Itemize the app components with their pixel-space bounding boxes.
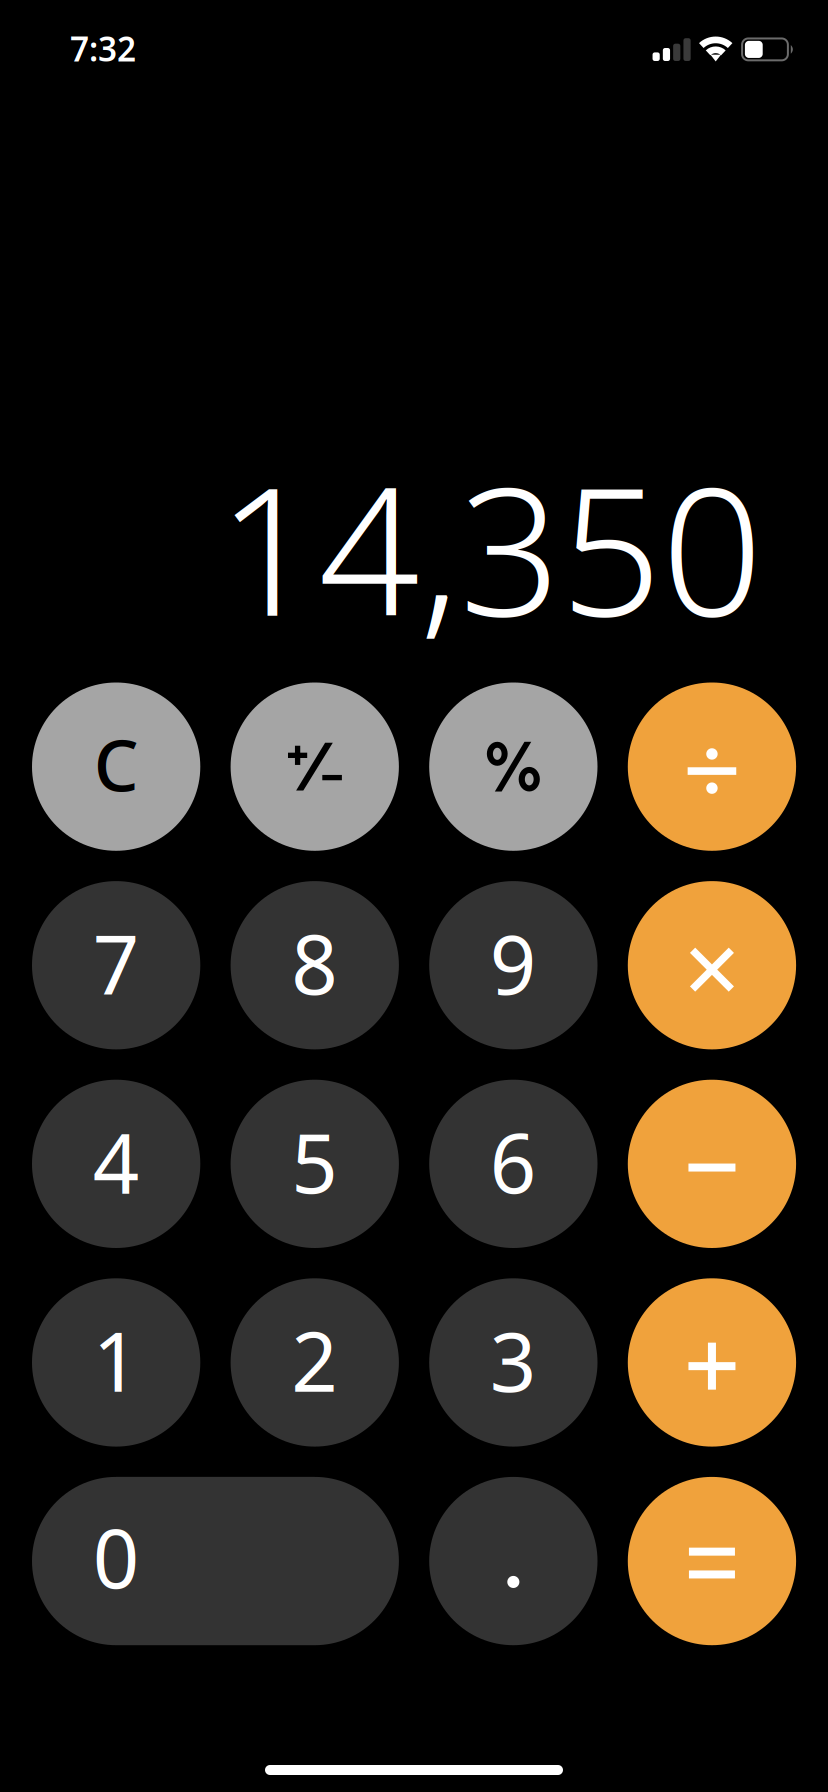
staticText: 8: [291, 909, 338, 1017]
button[interactable]: Subtract: [628, 1080, 796, 1248]
button[interactable]: 9: [429, 881, 597, 1049]
button[interactable]: 6: [429, 1080, 597, 1248]
button[interactable]: 1: [32, 1278, 200, 1447]
staticText: 2: [291, 1306, 338, 1414]
button[interactable]: Decimal point: [429, 1477, 597, 1645]
button[interactable]: 4: [32, 1080, 200, 1248]
button[interactable]: Percent: [429, 682, 597, 851]
button[interactable]: Multiply: [628, 881, 796, 1049]
button[interactable]: C: [32, 682, 200, 851]
staticText: 1: [93, 1306, 140, 1414]
button[interactable]: 5: [231, 1080, 399, 1248]
staticText: 14,350: [217, 429, 762, 665]
button[interactable]: Add: [628, 1278, 796, 1447]
button[interactable]: 3: [429, 1278, 597, 1447]
staticText: C: [94, 717, 139, 811]
staticText: 6: [490, 1108, 537, 1216]
staticText: 7:32: [70, 26, 136, 71]
button[interactable]: Divide: [628, 682, 796, 851]
staticText: 4: [93, 1108, 140, 1216]
staticText: 3: [490, 1306, 537, 1414]
button[interactable]: Toggle sign: [231, 682, 399, 851]
staticText: 7: [93, 909, 140, 1017]
button[interactable]: 8: [231, 881, 399, 1049]
button[interactable]: 7: [32, 881, 200, 1049]
button[interactable]: 0: [32, 1477, 399, 1645]
staticText: 0: [93, 1503, 140, 1611]
staticText: 9: [490, 909, 537, 1017]
button[interactable]: Equals: [628, 1477, 796, 1645]
staticText: 5: [291, 1108, 338, 1216]
button[interactable]: 2: [231, 1278, 399, 1447]
